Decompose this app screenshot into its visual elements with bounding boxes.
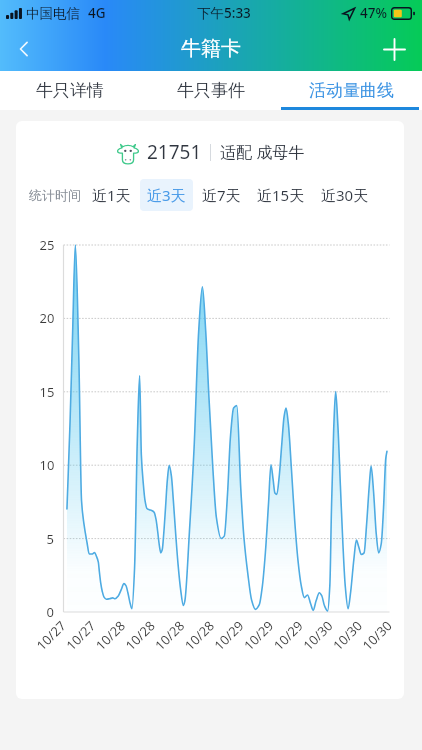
staticText: 47% xyxy=(360,4,387,22)
staticText: 4G xyxy=(88,4,106,22)
button[interactable]: 活动量曲线 xyxy=(281,71,422,110)
staticText: 近15天 xyxy=(257,185,305,205)
button[interactable]: 牛只事件 xyxy=(140,71,281,110)
button[interactable]: 近7天 xyxy=(195,179,248,211)
button[interactable]: 近3天 xyxy=(140,179,193,211)
staticText: 牛籍卡 xyxy=(181,36,241,61)
button[interactable]: 返回 xyxy=(4,29,44,69)
staticText: 统计时间 xyxy=(29,187,81,203)
staticText: 近1天 xyxy=(92,185,131,205)
staticText: 下午5:33 xyxy=(197,4,251,22)
button[interactable]: 近15天 xyxy=(250,179,312,211)
staticText: 牛只事件 xyxy=(177,80,245,101)
staticText: 近30天 xyxy=(321,185,369,205)
staticText: 近7天 xyxy=(202,185,241,205)
staticText: 牛只详情 xyxy=(36,80,104,101)
staticText: 中国电信 xyxy=(26,5,80,22)
button[interactable]: 添加 xyxy=(374,29,414,69)
button[interactable]: 近30天 xyxy=(314,179,376,211)
staticText: 21751 xyxy=(147,139,202,165)
staticText: 适配 成母牛 xyxy=(220,141,305,163)
button[interactable]: 牛只详情 xyxy=(0,71,140,110)
staticText: 活动量曲线 xyxy=(309,80,394,101)
button[interactable]: 近1天 xyxy=(85,179,138,211)
staticText: 近3天 xyxy=(147,185,186,205)
